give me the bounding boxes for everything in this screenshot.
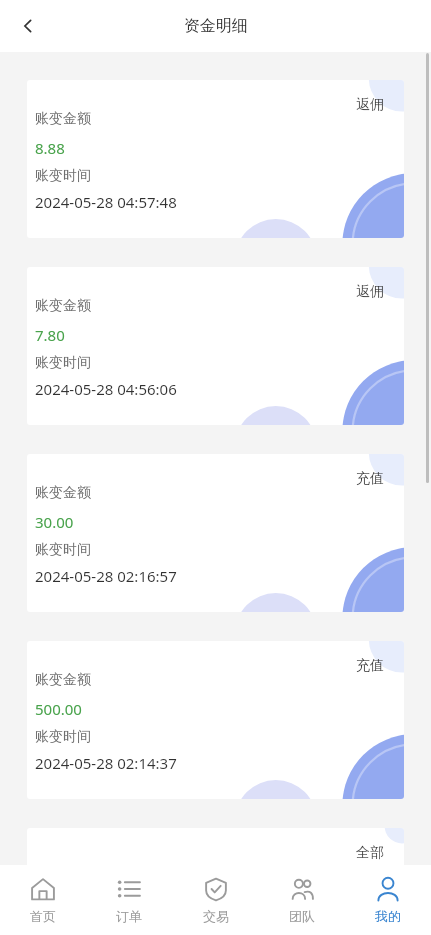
button[interactable]: 订单 xyxy=(86,865,172,935)
staticText: 账变金额 xyxy=(35,297,91,315)
staticText: 资金明细 xyxy=(184,16,248,36)
button[interactable]: 充值 xyxy=(27,641,404,799)
staticText: 返佣 xyxy=(356,96,384,114)
staticText: 账变金额 xyxy=(35,110,91,128)
staticText: 全部 xyxy=(356,844,384,862)
staticText: 订单 xyxy=(116,908,142,924)
button[interactable]: 交易 xyxy=(173,865,259,935)
staticText: 首页 xyxy=(30,908,56,924)
staticText: 充值 xyxy=(356,470,384,488)
staticText: 2024-05-28 02:14:37 xyxy=(35,753,177,773)
staticText: 交易 xyxy=(203,908,229,924)
staticText: 团队 xyxy=(289,908,315,924)
staticText: 账变金额 xyxy=(35,484,91,502)
staticText: 账变金额 xyxy=(35,671,91,689)
staticText: 8.88 xyxy=(35,138,65,158)
staticText: 我的 xyxy=(375,908,401,924)
staticText: 账变时间 xyxy=(35,167,91,185)
button[interactable]: 返佣 xyxy=(27,267,404,425)
button[interactable]: 全部 xyxy=(27,828,404,865)
staticText: 500.00 xyxy=(35,699,82,719)
staticText: 30.00 xyxy=(35,512,74,532)
button[interactable]: 我的 xyxy=(345,865,431,935)
staticText: 返佣 xyxy=(356,283,384,301)
button[interactable]: 团队 xyxy=(259,865,345,935)
staticText: 账变时间 xyxy=(35,728,91,746)
button[interactable]: 返佣 xyxy=(27,80,404,238)
staticText: 2024-05-28 04:57:48 xyxy=(35,192,177,212)
button[interactable]: 充值 xyxy=(27,454,404,612)
staticText: 账变时间 xyxy=(35,354,91,372)
staticText: 充值 xyxy=(356,657,384,675)
button[interactable]: Back xyxy=(6,4,50,48)
button[interactable]: 首页 xyxy=(0,865,86,935)
staticText: 账变时间 xyxy=(35,541,91,559)
staticText: 7.80 xyxy=(35,325,65,345)
staticText: 2024-05-28 02:16:57 xyxy=(35,566,177,586)
staticText: 2024-05-28 04:56:06 xyxy=(35,379,177,399)
